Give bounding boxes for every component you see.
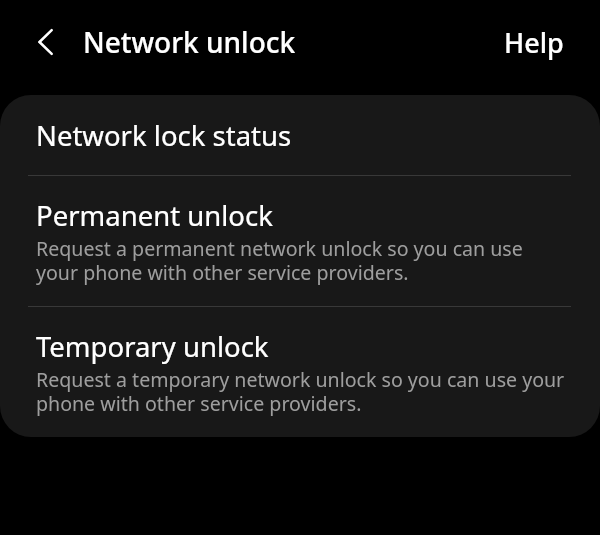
staticText: Request a temporary network unlock so yo… (36, 366, 565, 417)
button[interactable]: Temporary unlock (0, 307, 600, 437)
button[interactable]: Permanent unlock (0, 176, 600, 306)
button[interactable]: Navigate up (21, 18, 69, 66)
staticText: Permanent unlock (36, 197, 273, 234)
staticText: Network lock status (36, 117, 292, 154)
staticText: Temporary unlock (36, 328, 269, 365)
button[interactable]: Network lock status (0, 95, 600, 175)
button[interactable]: Help (484, 10, 600, 75)
staticText: Network unlock (83, 23, 296, 61)
staticText: Help (504, 24, 564, 61)
staticText: Request a permanent network unlock so yo… (36, 235, 523, 286)
